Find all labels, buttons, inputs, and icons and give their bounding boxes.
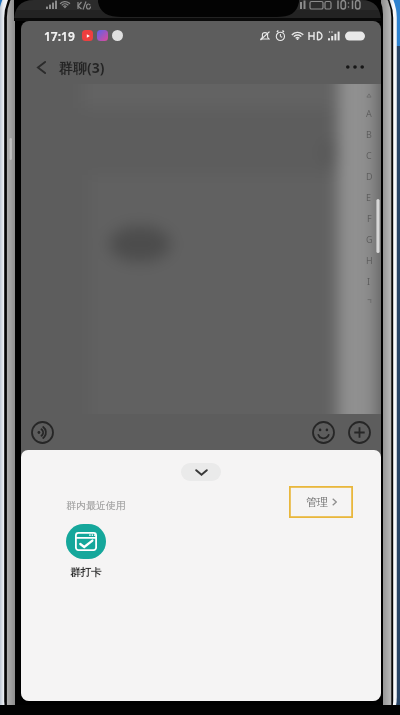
button[interactable]: More functions [348, 421, 371, 444]
staticText: H [366, 254, 373, 266]
staticText: E [366, 191, 372, 203]
staticText: 17:19 [44, 28, 75, 44]
staticText: 管理 [306, 495, 328, 509]
staticText: G [366, 233, 373, 245]
button[interactable]: Emoji [312, 421, 335, 444]
staticText: B [366, 128, 372, 140]
staticText: F [367, 212, 372, 224]
button[interactable]: More options [341, 53, 369, 81]
staticText: 群聊(3) [59, 58, 105, 77]
button[interactable]: Collapse panel [181, 463, 221, 481]
button[interactable]: Back [28, 54, 54, 80]
staticText: C [366, 149, 372, 161]
staticText: A [366, 107, 372, 119]
button[interactable]: 管理 [289, 486, 353, 518]
button[interactable]: Voice message [31, 421, 54, 444]
staticText: I [367, 275, 371, 287]
staticText: D [366, 170, 373, 182]
staticText: 群内最近使用 [66, 499, 126, 512]
staticText: 群打卡 [70, 566, 102, 579]
button[interactable]: 群打卡 [46, 524, 126, 579]
